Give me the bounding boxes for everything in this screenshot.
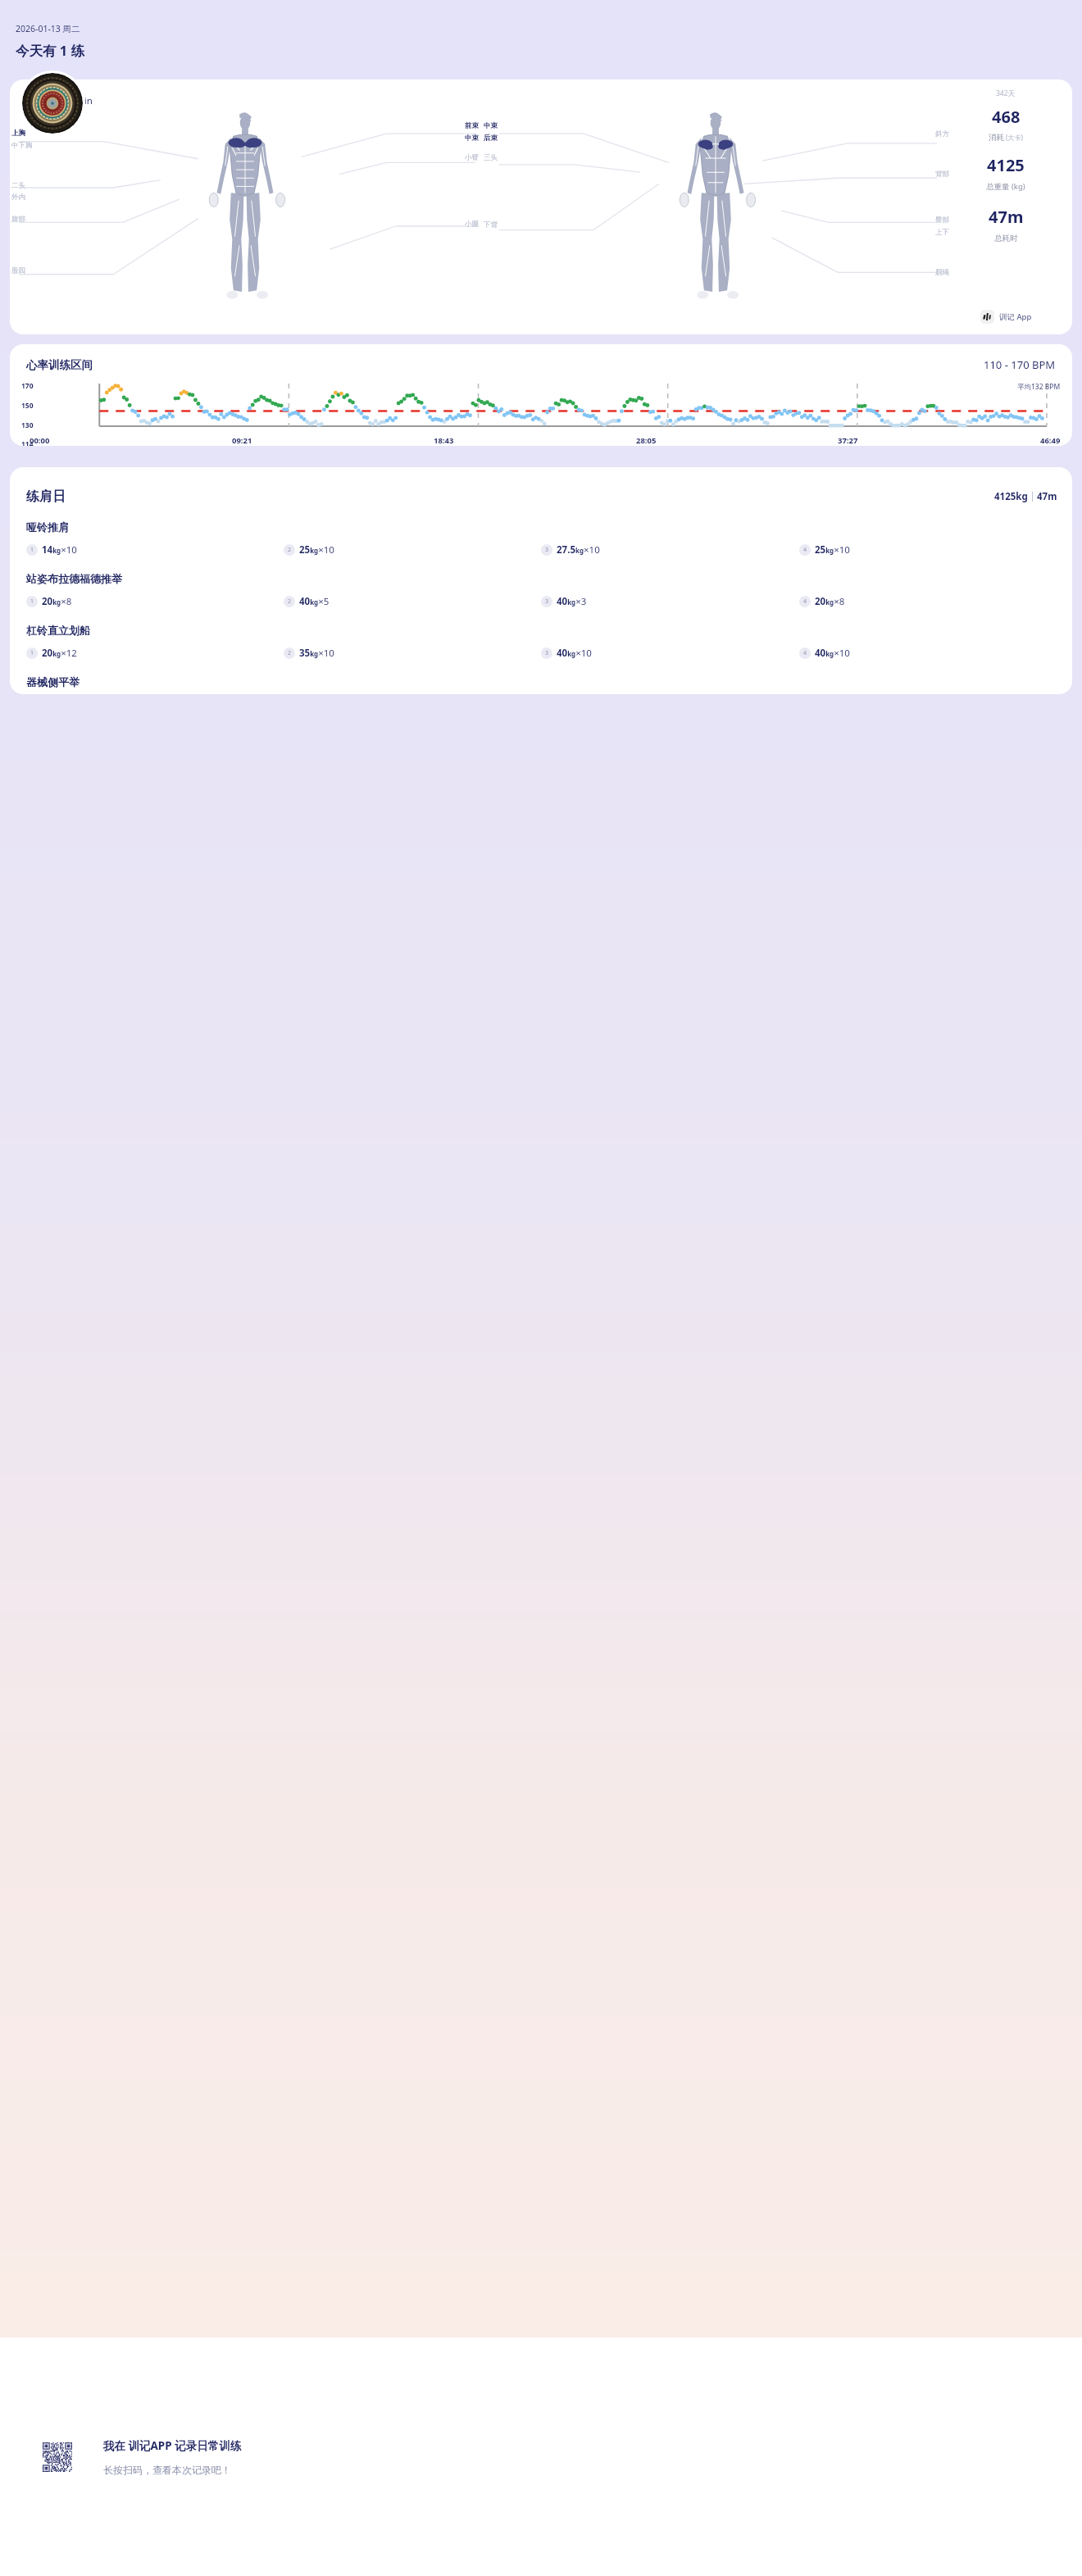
staticText: 09:21 bbox=[232, 435, 252, 446]
staticText: 35kg×10 bbox=[299, 647, 334, 660]
staticText: 4 bbox=[803, 546, 807, 554]
staticText: 器械侧平举 bbox=[26, 675, 80, 688]
staticText: 背部 bbox=[935, 170, 949, 179]
button[interactable]: Profile avatar bbox=[22, 73, 83, 134]
staticText: 中下胸 bbox=[11, 141, 33, 150]
staticText: 后束 bbox=[484, 134, 498, 143]
staticText: 前束 bbox=[465, 121, 479, 130]
staticText: 我在 训记APP 记录日常训练 bbox=[103, 2438, 242, 2453]
staticText: 25kg×10 bbox=[299, 543, 334, 557]
staticText: 1 bbox=[30, 546, 34, 554]
staticText: 腘绳 bbox=[935, 268, 949, 277]
staticText: 20kg×8 bbox=[42, 595, 72, 608]
staticText: 1 bbox=[30, 597, 34, 606]
staticText: 二头 bbox=[11, 181, 25, 190]
staticText: 3 bbox=[545, 649, 549, 657]
staticText: 外内 bbox=[11, 193, 25, 202]
staticText: 28:05 bbox=[636, 435, 657, 446]
staticText: 2 bbox=[288, 546, 292, 554]
staticText: 上下 bbox=[935, 228, 949, 237]
staticText: 468 bbox=[992, 106, 1021, 128]
staticText: 20kg×12 bbox=[42, 647, 77, 660]
staticText: 消耗 (大卡) bbox=[989, 133, 1023, 143]
staticText: 3 bbox=[545, 546, 549, 554]
staticText: 18:43 bbox=[434, 435, 454, 446]
staticText: 4125 bbox=[987, 154, 1025, 176]
button[interactable]: 练肩日 bbox=[26, 467, 1057, 694]
staticText: 练肩日 bbox=[26, 488, 66, 505]
staticText: 47m bbox=[1037, 490, 1057, 503]
staticText: 47m bbox=[989, 206, 1024, 228]
staticText: 中束 bbox=[465, 134, 479, 143]
staticText: 今天有 1 练 bbox=[16, 41, 85, 60]
staticText: 总重量 (kg) bbox=[986, 181, 1025, 192]
staticText: 37:27 bbox=[838, 435, 858, 446]
staticText: 哑铃推肩 bbox=[26, 520, 69, 534]
staticText: 小臂 bbox=[465, 153, 479, 162]
staticText: 平均132 BPM bbox=[1017, 382, 1061, 392]
staticText: 训记 App bbox=[999, 311, 1032, 322]
staticText: 40kg×10 bbox=[557, 647, 592, 660]
staticText: 110 - 170 BPM bbox=[984, 357, 1056, 372]
staticText: 40kg×3 bbox=[557, 595, 587, 608]
button[interactable]: Martin bbox=[10, 80, 1072, 334]
staticText: 40kg×10 bbox=[815, 647, 850, 660]
staticText: 总耗时 bbox=[994, 234, 1018, 243]
staticText: Martin bbox=[63, 94, 93, 107]
staticText: 40kg×5 bbox=[299, 595, 330, 608]
staticText: 中束 bbox=[484, 121, 498, 130]
staticText: 斜方 bbox=[935, 129, 949, 139]
staticText: 上胸 bbox=[11, 129, 25, 138]
staticText: 心率训练区间 bbox=[26, 358, 93, 372]
staticText: 小腿 bbox=[465, 220, 479, 229]
staticText: 臀部 bbox=[935, 216, 949, 225]
staticText: 20kg×8 bbox=[815, 595, 845, 608]
staticText: 2026-01-13 周二 bbox=[16, 23, 80, 34]
staticText: 170 bbox=[21, 381, 34, 391]
staticText: 4 bbox=[803, 649, 807, 657]
button[interactable]: 心率训练区间 bbox=[10, 344, 1072, 446]
staticText: 1 bbox=[30, 649, 34, 657]
staticText: 114 bbox=[21, 439, 34, 446]
staticText: 三头 bbox=[484, 153, 498, 162]
staticText: 342天 bbox=[996, 89, 1016, 98]
staticText: 2 bbox=[288, 649, 292, 657]
staticText: 2 bbox=[288, 597, 292, 606]
staticText: 00:00 bbox=[30, 435, 50, 446]
staticText: 股四 bbox=[11, 266, 25, 275]
staticText: 长按扫码，查看本次记录吧！ bbox=[103, 2464, 231, 2476]
staticText: 25kg×10 bbox=[815, 543, 850, 557]
staticText: 3 bbox=[545, 597, 549, 606]
staticText: 150 bbox=[21, 401, 34, 411]
staticText: 4 bbox=[803, 597, 807, 606]
staticText: 46:49 bbox=[1040, 435, 1061, 446]
staticText: 下背 bbox=[484, 220, 498, 229]
staticText: 130 bbox=[21, 420, 34, 430]
staticText: 站姿布拉德福德推举 bbox=[26, 572, 122, 585]
staticText: 14kg×10 bbox=[42, 543, 77, 557]
staticText: 27.5kg×10 bbox=[557, 543, 600, 557]
button[interactable]: QR code bbox=[43, 2442, 72, 2472]
staticText: 杠铃直立划船 bbox=[26, 624, 90, 637]
staticText: 腹部 bbox=[11, 215, 25, 224]
staticText: 4125kg bbox=[994, 490, 1028, 503]
